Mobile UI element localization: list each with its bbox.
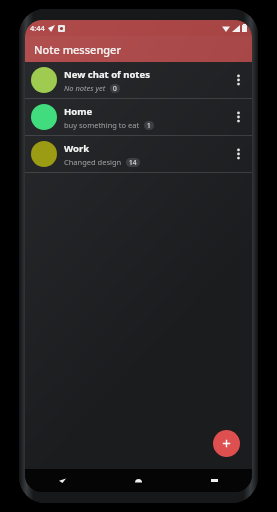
button[interactable]: Home [100,469,176,492]
staticText: New chat of notes [64,68,150,81]
staticText: 14 [129,158,137,167]
staticText: buy something to eat [64,120,140,130]
button[interactable]: More options [228,62,248,98]
button[interactable]: Recent apps [176,469,252,492]
button[interactable]: Work [25,136,252,172]
button[interactable]: New chat [213,430,240,457]
button[interactable]: Home [25,99,252,135]
staticText: 4:44 [30,23,45,33]
staticText: 1 [147,121,151,130]
staticText: Note messenger [34,42,122,57]
staticText: Work [64,142,90,155]
button[interactable]: Back [25,469,100,492]
staticText: Home [64,105,93,118]
staticText: Changed design [64,157,122,167]
staticText: 0 [113,84,117,93]
button[interactable]: New chat of notes [25,62,252,98]
button[interactable]: More options [228,136,248,172]
button[interactable]: More options [228,99,248,135]
staticText: No notes yet [64,83,106,93]
